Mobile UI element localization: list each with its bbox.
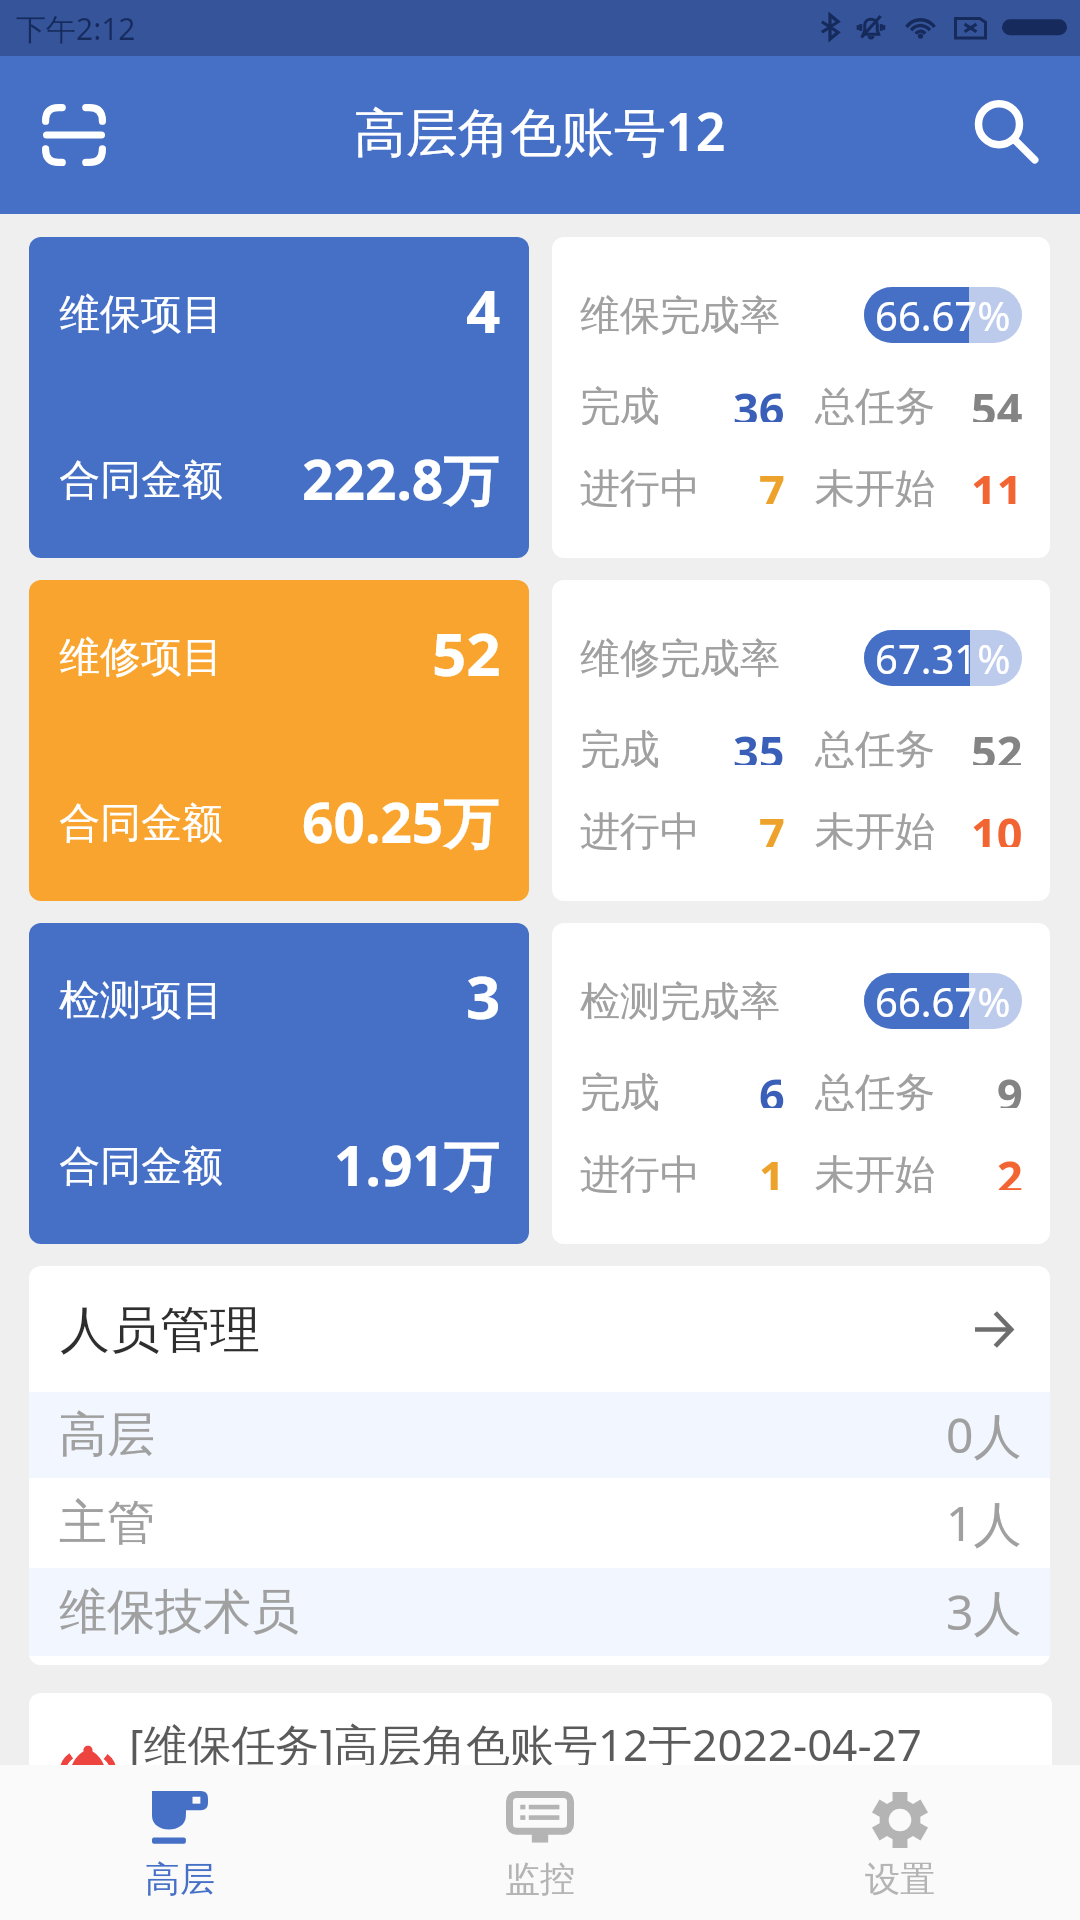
staticText: 维保完成率 [580,290,780,340]
button[interactable]: 主管 [29,1478,1050,1568]
button[interactable]: 维修项目 [29,580,529,901]
button[interactable]: 人员管理 [29,1266,1050,1392]
staticText: 人员管理 [60,1299,260,1362]
button[interactable]: 监控 [360,1765,720,1920]
staticText: 52 [971,721,1023,765]
button[interactable]: 检测项目 [29,923,529,1244]
staticText: 维修完成率 [580,633,780,683]
staticText: 1 [759,1146,785,1190]
button[interactable]: 检测完成率 [552,923,1050,1244]
staticText: 完成 [580,724,660,768]
staticText: 35 [733,721,785,765]
staticText: 60.25万 [302,784,499,859]
staticText: 合同金额 [59,1141,223,1193]
staticText: 高层角色账号12 [354,95,726,166]
button[interactable]: 维保技术员 [29,1568,1050,1656]
staticText: 52 [432,612,501,694]
staticText: 总任务 [815,1067,935,1111]
staticText: 未开始 [815,463,935,507]
staticText: 进行中 [580,463,700,507]
staticText: 高层 [59,1405,155,1465]
staticText: 未开始 [815,1149,935,1193]
staticText: 3 [466,955,501,1037]
staticText: 未开始 [815,806,935,850]
staticText: 0人 [946,1402,1022,1468]
staticText: 总任务 [815,381,935,425]
button[interactable]: [维保任务]高层角色账号12于2022-04-27 [29,1693,1052,1853]
staticText: 合同金额 [59,455,223,507]
staticText: 66.67% [875,288,1011,342]
button[interactable]: 维保项目 [29,237,529,558]
button[interactable]: 高层 [0,1765,360,1920]
staticText: 10 [971,803,1023,847]
staticText: 1人 [946,1490,1022,1556]
staticText: 11 [971,460,1023,504]
staticText: 主管 [59,1493,155,1553]
staticText: 检测项目 [59,975,223,1027]
staticText: 检测完成率 [580,976,780,1026]
staticText: 维保技术员 [59,1582,299,1642]
button[interactable]: Scan code [20,81,128,189]
button[interactable]: 维修完成率 [552,580,1050,901]
staticText: 监控 [505,1857,575,1901]
staticText: 2 [997,1146,1023,1190]
button[interactable]: 高层 [29,1392,1050,1478]
staticText: 4 [466,269,501,351]
staticText: 进行中 [580,806,700,850]
staticText: 67.31% [875,631,1011,685]
staticText: 1.91万 [334,1127,499,1202]
staticText: 9 [997,1064,1023,1108]
button[interactable]: 设置 [720,1765,1080,1920]
staticText: 222.8万 [302,441,499,516]
staticText: 总任务 [815,724,935,768]
staticText: 维修项目 [59,632,223,684]
staticText: 下午2:12 [16,8,136,49]
staticText: 54 [971,378,1023,422]
staticText: 66.67% [875,974,1011,1028]
staticText: 36 [733,378,785,422]
staticText: 进行中 [580,1149,700,1193]
staticText: 维保项目 [59,289,223,341]
button[interactable]: Search [952,81,1060,189]
staticText: 7 [759,803,785,847]
staticText: 3人 [946,1579,1022,1645]
staticText: 设置 [865,1857,935,1901]
staticText: 完成 [580,1067,660,1111]
staticText: [维保任务]高层角色账号12于2022-04-27 [129,1714,922,1774]
button[interactable]: 维保完成率 [552,237,1050,558]
staticText: 高层 [145,1857,215,1901]
staticText: 6 [759,1064,785,1108]
staticText: 完成 [580,381,660,425]
staticText: 7 [759,460,785,504]
staticText: 合同金额 [59,798,223,850]
